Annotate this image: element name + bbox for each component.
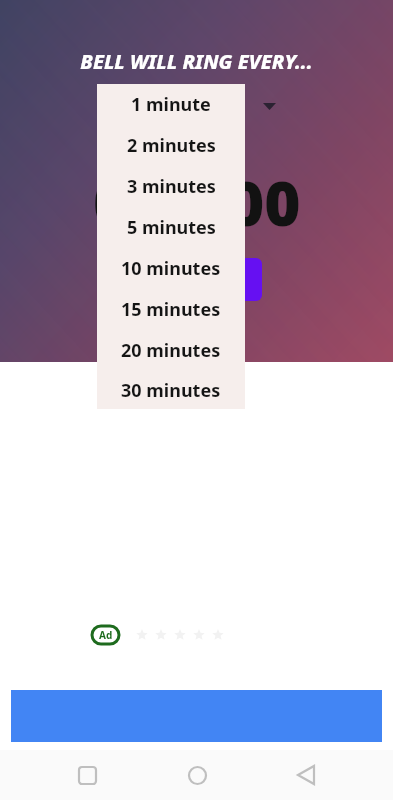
staticText: 00: [93, 160, 166, 244]
staticText: BELL WILL RING EVERY...: [0, 48, 393, 75]
staticText: 10 minutes: [121, 256, 221, 281]
staticText: 2 minutes: [127, 133, 216, 158]
staticText: 00: [228, 160, 301, 244]
button[interactable]: 20 minutes: [97, 330, 245, 371]
button[interactable]: Open interval list: [258, 95, 280, 117]
button[interactable]: 5 minutes: [97, 207, 245, 248]
staticText: 3 minutes: [127, 174, 216, 199]
button[interactable]: 15 minutes: [97, 289, 245, 330]
button[interactable]: Ad: [92, 626, 119, 644]
button[interactable]: 10 minutes: [97, 248, 245, 289]
button[interactable]: 30 minutes: [97, 371, 245, 409]
staticText: :: [188, 160, 206, 244]
staticText: 15 minutes: [121, 297, 221, 322]
staticText: 5 minutes: [127, 215, 216, 240]
button[interactable]: Start timer: [196, 258, 262, 301]
staticText: 20 minutes: [121, 338, 221, 363]
staticText: 1 minute: [131, 92, 211, 117]
button[interactable]: Home: [175, 753, 219, 797]
staticText: 30 minutes: [121, 378, 221, 403]
button[interactable]: Back: [284, 753, 328, 797]
button[interactable]: 2 minutes: [97, 125, 245, 166]
button[interactable]: Recent apps: [65, 753, 109, 797]
button[interactable]: 3 minutes: [97, 166, 245, 207]
button[interactable]: 1 minute: [97, 84, 245, 125]
staticText: Ad: [99, 628, 113, 642]
